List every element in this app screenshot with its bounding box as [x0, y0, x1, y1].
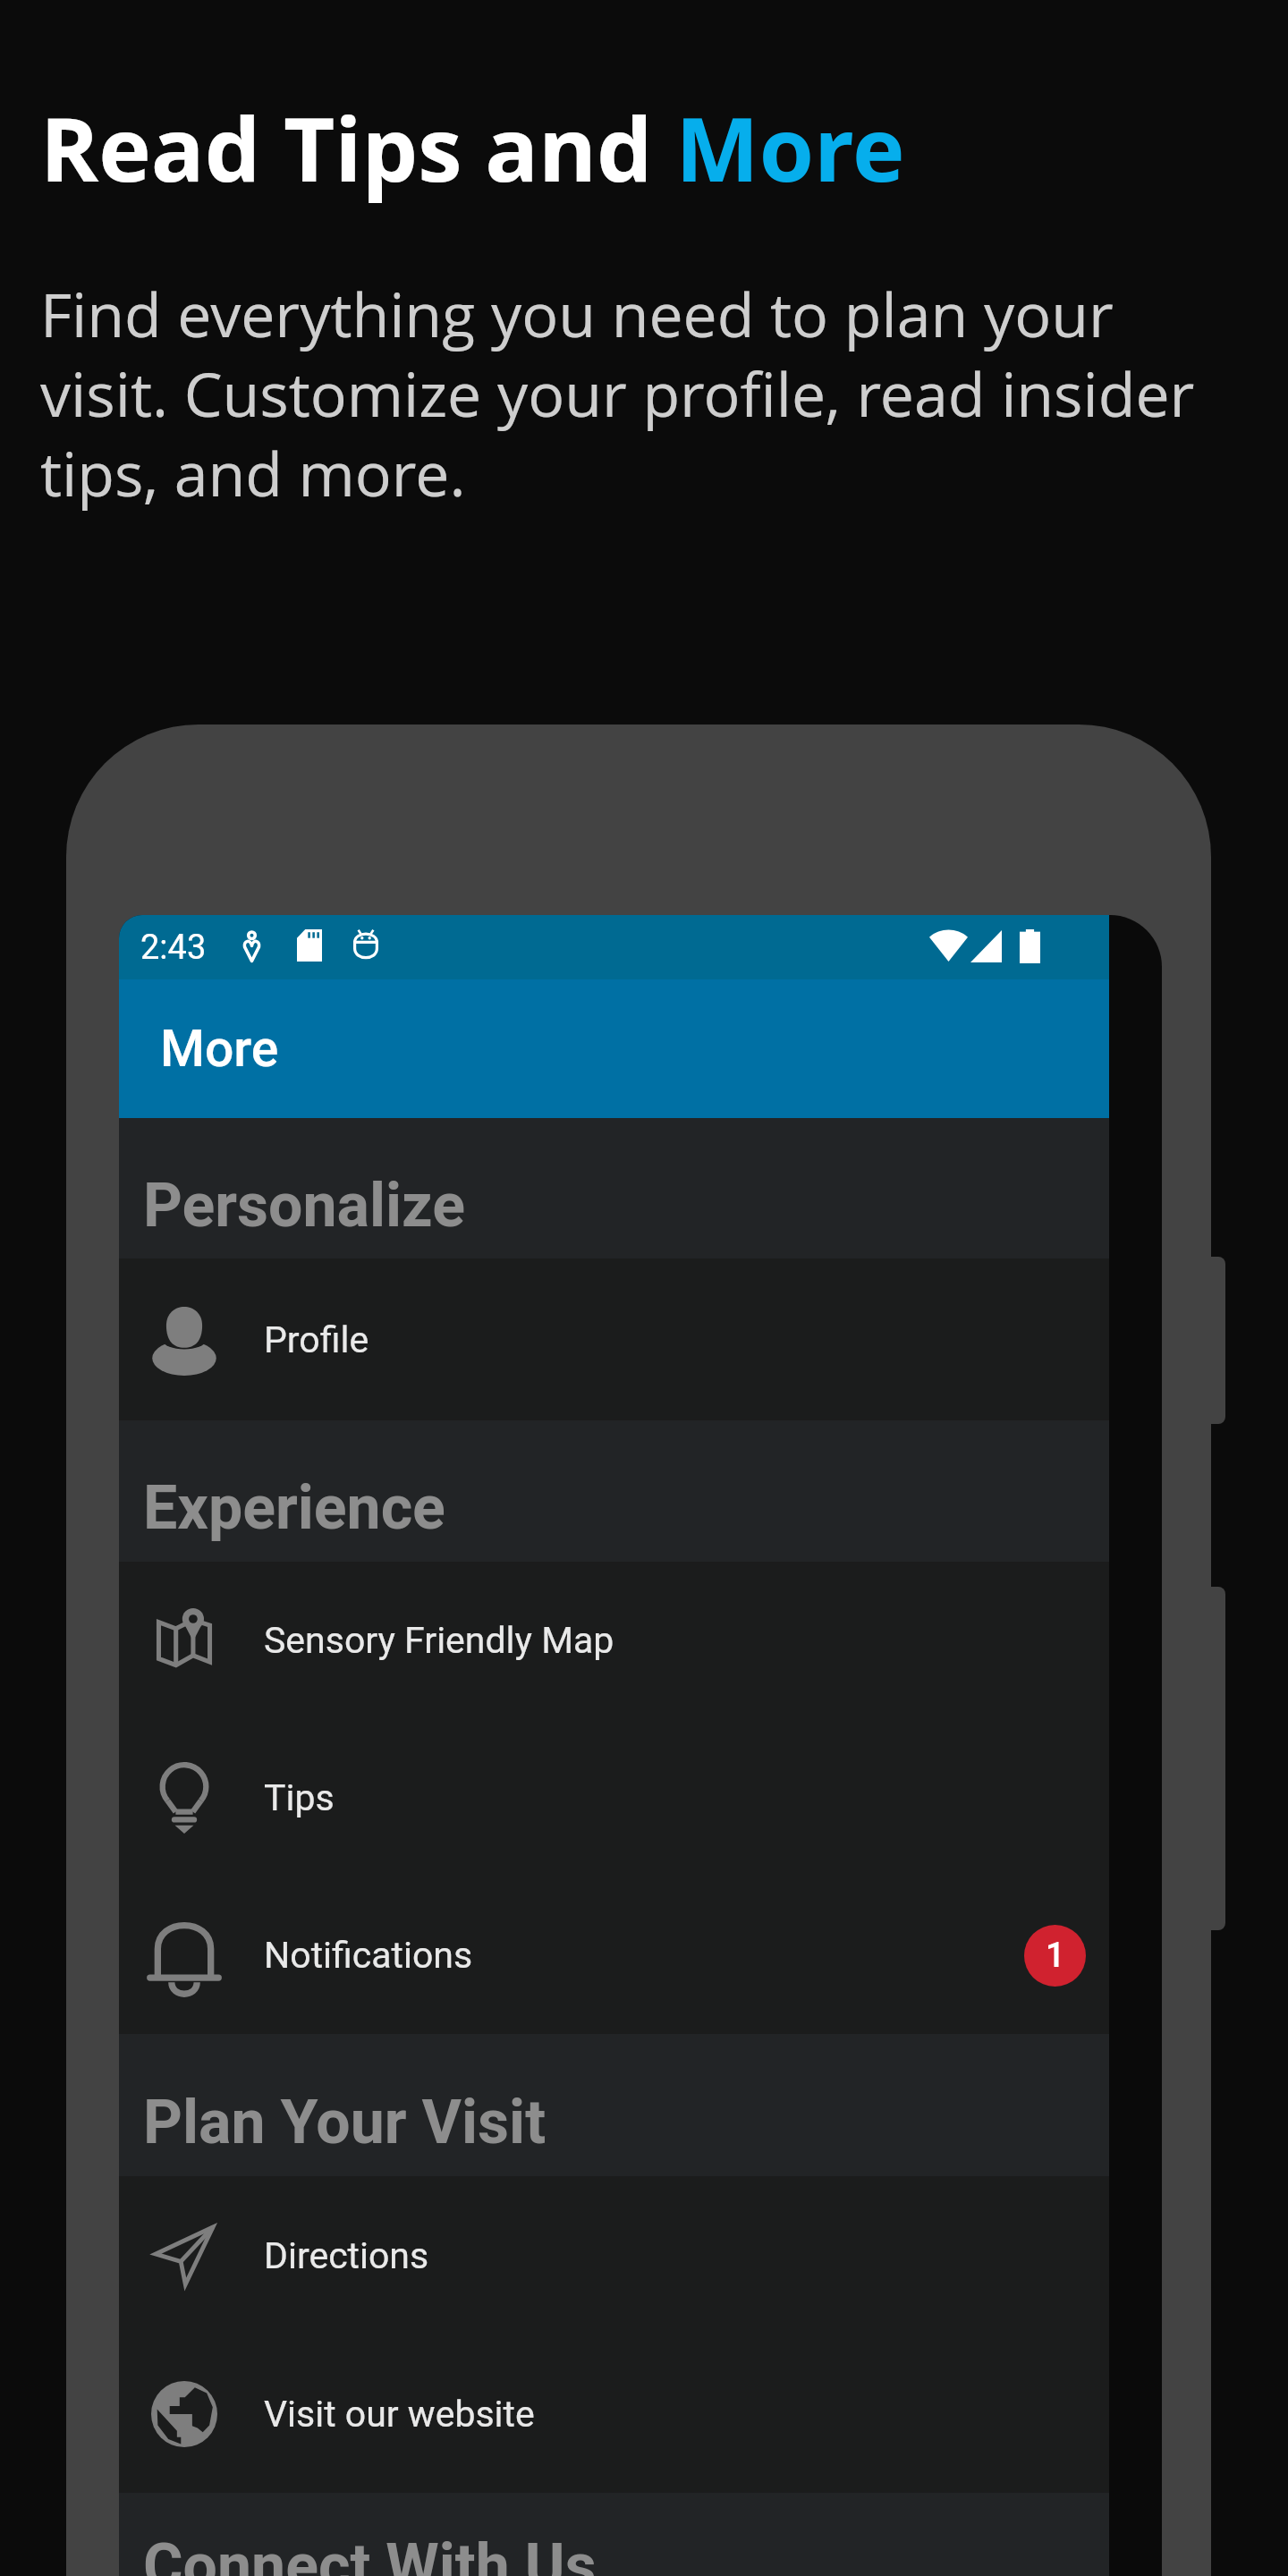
staticText: Read Tips and More — [40, 87, 905, 208]
staticText: Tips — [264, 1776, 335, 1819]
button[interactable]: Sensory Friendly Map — [119, 1562, 1109, 1719]
button[interactable]: Directions — [119, 2176, 1109, 2334]
staticText: 1 — [1046, 1936, 1065, 1976]
staticText: Notifications — [264, 1934, 473, 1977]
staticText: Sensory Friendly Map — [264, 1619, 614, 1662]
button[interactable]: Visit our website — [119, 2334, 1109, 2493]
staticText: Experience — [143, 1472, 445, 1544]
staticText: Profile — [264, 1318, 369, 1361]
staticText: Directions — [264, 2234, 429, 2277]
button[interactable]: Tips — [119, 1719, 1109, 1877]
staticText: Visit our website — [264, 2393, 535, 2436]
staticText: 2:43 — [140, 928, 207, 968]
staticText: Find everything you need to plan your vi… — [40, 272, 1239, 514]
staticText: Personalize — [143, 1170, 465, 1241]
staticText: Connect With Us — [143, 2530, 597, 2576]
button[interactable]: More — [119, 979, 1109, 1118]
button[interactable]: Profile — [119, 1258, 1109, 1420]
staticText: More — [160, 1019, 279, 1079]
staticText: Plan Your Visit — [143, 2087, 547, 2158]
button[interactable]: Notifications — [119, 1877, 1109, 2034]
